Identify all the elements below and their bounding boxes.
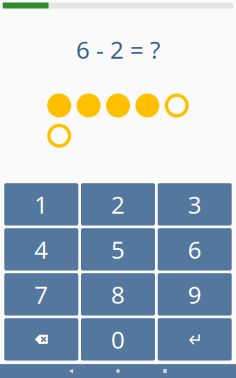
staticText: 6 <box>188 233 202 265</box>
button[interactable]: 4 <box>4 228 78 270</box>
button[interactable]: 6 <box>158 228 232 270</box>
button[interactable]: 9 <box>158 273 232 315</box>
button[interactable]: Enter <box>158 318 232 360</box>
button[interactable]: Home <box>94 364 141 378</box>
staticText: 2 <box>111 188 125 220</box>
staticText: 8 <box>111 278 125 310</box>
staticText: 9 <box>188 278 202 310</box>
button[interactable]: 0 <box>81 318 155 360</box>
staticText: 1 <box>34 188 48 220</box>
button[interactable]: Recents <box>141 364 188 378</box>
button[interactable]: 8 <box>81 273 155 315</box>
staticText: 5 <box>111 233 125 265</box>
button[interactable]: 1 <box>4 183 78 225</box>
button[interactable]: 3 <box>158 183 232 225</box>
button[interactable]: 7 <box>4 273 78 315</box>
staticText: 6 - 2 = ? <box>76 34 160 65</box>
button[interactable]: Backspace <box>4 318 78 360</box>
staticText: 0 <box>111 323 125 355</box>
button[interactable]: 5 <box>81 228 155 270</box>
staticText: 7 <box>34 278 48 310</box>
button[interactable]: Back <box>47 364 94 378</box>
staticText: 3 <box>188 188 202 220</box>
button[interactable]: 2 <box>81 183 155 225</box>
staticText: 4 <box>34 233 48 265</box>
